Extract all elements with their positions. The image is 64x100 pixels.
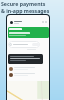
button[interactable]: Accept	[9, 41, 39, 48]
button[interactable]	[9, 66, 47, 71]
button[interactable]	[9, 72, 47, 77]
staticText: & in-app messages	[1, 7, 50, 14]
button[interactable]	[8, 54, 43, 64]
button[interactable]	[8, 27, 49, 38]
button[interactable]: Call	[10, 19, 47, 25]
staticText: Secure payments	[1, 0, 46, 7]
